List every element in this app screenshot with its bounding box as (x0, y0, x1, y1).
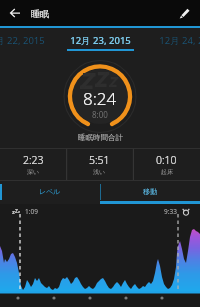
staticText: 9:33 (164, 207, 177, 216)
button[interactable]: 12月 23, 2015 (56, 28, 144, 53)
staticText: Z (15, 208, 18, 215)
staticText: 2:23 (23, 153, 44, 167)
staticText: 1:09 (25, 207, 38, 216)
button[interactable]: 0:10 (133, 148, 200, 181)
staticText: z (18, 209, 20, 214)
button[interactable]: 5:51 (66, 148, 133, 181)
staticText: 12月 23, 2015 (70, 34, 131, 47)
staticText: 5:51 (89, 153, 110, 167)
staticText: 浅い (93, 168, 106, 176)
staticText: 深い (27, 168, 40, 176)
button[interactable]: Back (3, 1, 27, 25)
staticText: レベル (39, 187, 61, 196)
button[interactable]: 12月 24, 2015 (145, 28, 200, 53)
button[interactable]: 12月 22, 2015 (0, 28, 58, 53)
staticText: 起床 (161, 168, 173, 176)
button[interactable]: レベル (0, 181, 100, 204)
staticText: 睡眠時間合計 (78, 133, 123, 142)
staticText: 12月 22, 2015 (0, 34, 45, 47)
button[interactable]: 2:23 (0, 148, 66, 181)
button[interactable]: Edit (174, 2, 196, 24)
staticText: 12月 24, 2015 (159, 34, 200, 47)
staticText: 8:24 (83, 87, 117, 110)
staticText: 移動 (143, 187, 157, 196)
button[interactable]: 移動 (100, 181, 200, 204)
staticText: 8:00 (92, 109, 108, 120)
staticText: 0:10 (156, 153, 177, 167)
staticText: z (12, 208, 15, 216)
staticText: 睡眠 (31, 8, 49, 19)
